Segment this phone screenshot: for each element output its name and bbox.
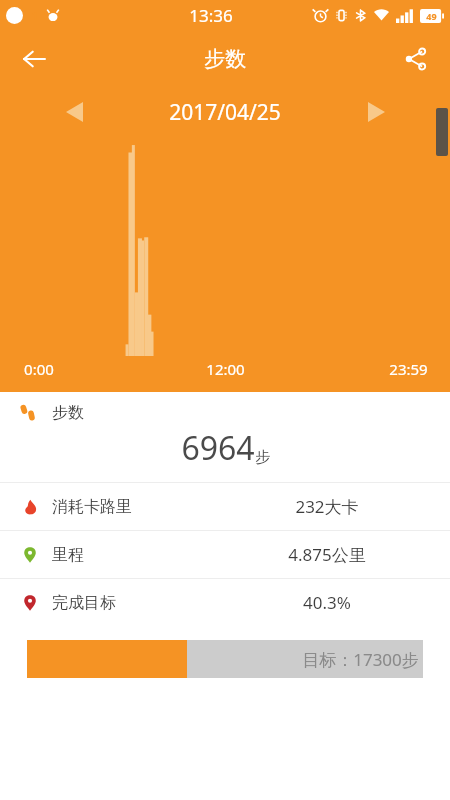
staticText: 2017/04/25 [169, 98, 281, 127]
staticText: 步 [255, 448, 270, 467]
staticText: 23:59 [389, 359, 428, 379]
staticText: 232大卡 [295, 495, 359, 518]
button[interactable]: Next day [354, 90, 398, 134]
staticText: 0:00 [24, 359, 54, 379]
button[interactable]: Share [392, 35, 440, 83]
button[interactable]: 消耗卡路里 [0, 483, 450, 530]
button[interactable]: 目标：17300步 [27, 640, 423, 678]
staticText: 4.875公里 [288, 543, 366, 566]
staticText: 13:36 [189, 4, 233, 27]
staticText: 步数 [204, 46, 246, 72]
staticText: 12:00 [206, 359, 245, 379]
button[interactable]: 完成目标 [0, 579, 450, 626]
staticText: 步数 [52, 403, 84, 423]
button[interactable]: Previous day [52, 90, 96, 134]
staticText: 目标：17300步 [302, 648, 419, 671]
staticText: 6964 [181, 426, 255, 470]
staticText: 完成目标 [52, 593, 116, 613]
staticText: 49 [426, 10, 437, 22]
button[interactable]: 步数 [0, 392, 450, 482]
button[interactable]: 里程 [0, 531, 450, 578]
staticText: 消耗卡路里 [52, 497, 132, 517]
staticText: 里程 [52, 545, 84, 565]
staticText: 40.3% [303, 591, 351, 614]
button[interactable]: Back [10, 35, 58, 83]
